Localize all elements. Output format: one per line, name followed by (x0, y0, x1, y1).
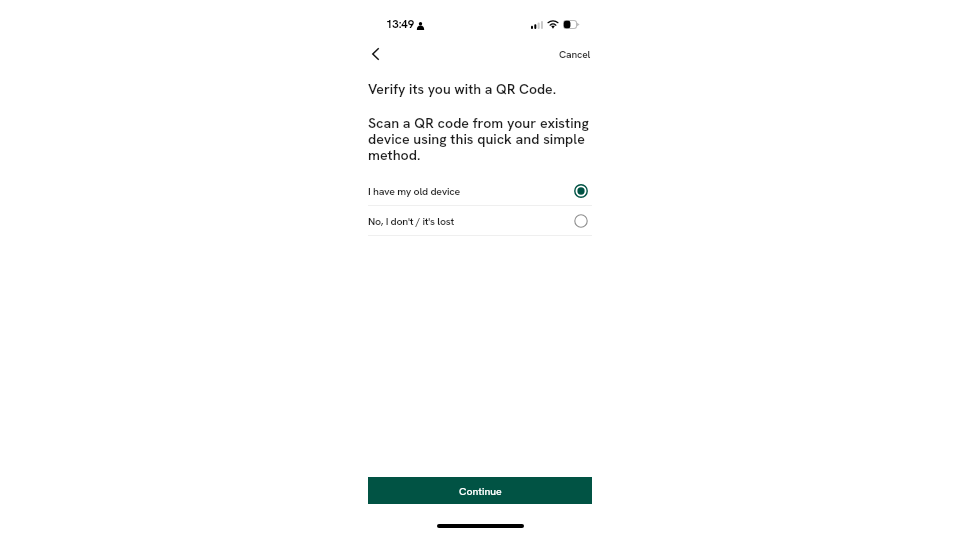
staticText: Scan a QR code from your existing device… (368, 114, 592, 165)
staticText: I have my old device (368, 184, 574, 198)
button[interactable]: Continue (368, 477, 592, 504)
staticText: Continue (459, 484, 502, 498)
staticText: 13:49 (386, 16, 415, 31)
staticText: No, I don't / it's lost (368, 214, 574, 228)
button[interactable]: No, I don't / it's lost (368, 206, 592, 235)
button[interactable]: Back (365, 44, 385, 64)
staticText: Verify its you with a QR Code. (368, 80, 557, 98)
button[interactable]: Cancel (557, 44, 593, 65)
button[interactable]: I have my old device (368, 176, 592, 205)
staticText: Cancel (559, 48, 591, 61)
